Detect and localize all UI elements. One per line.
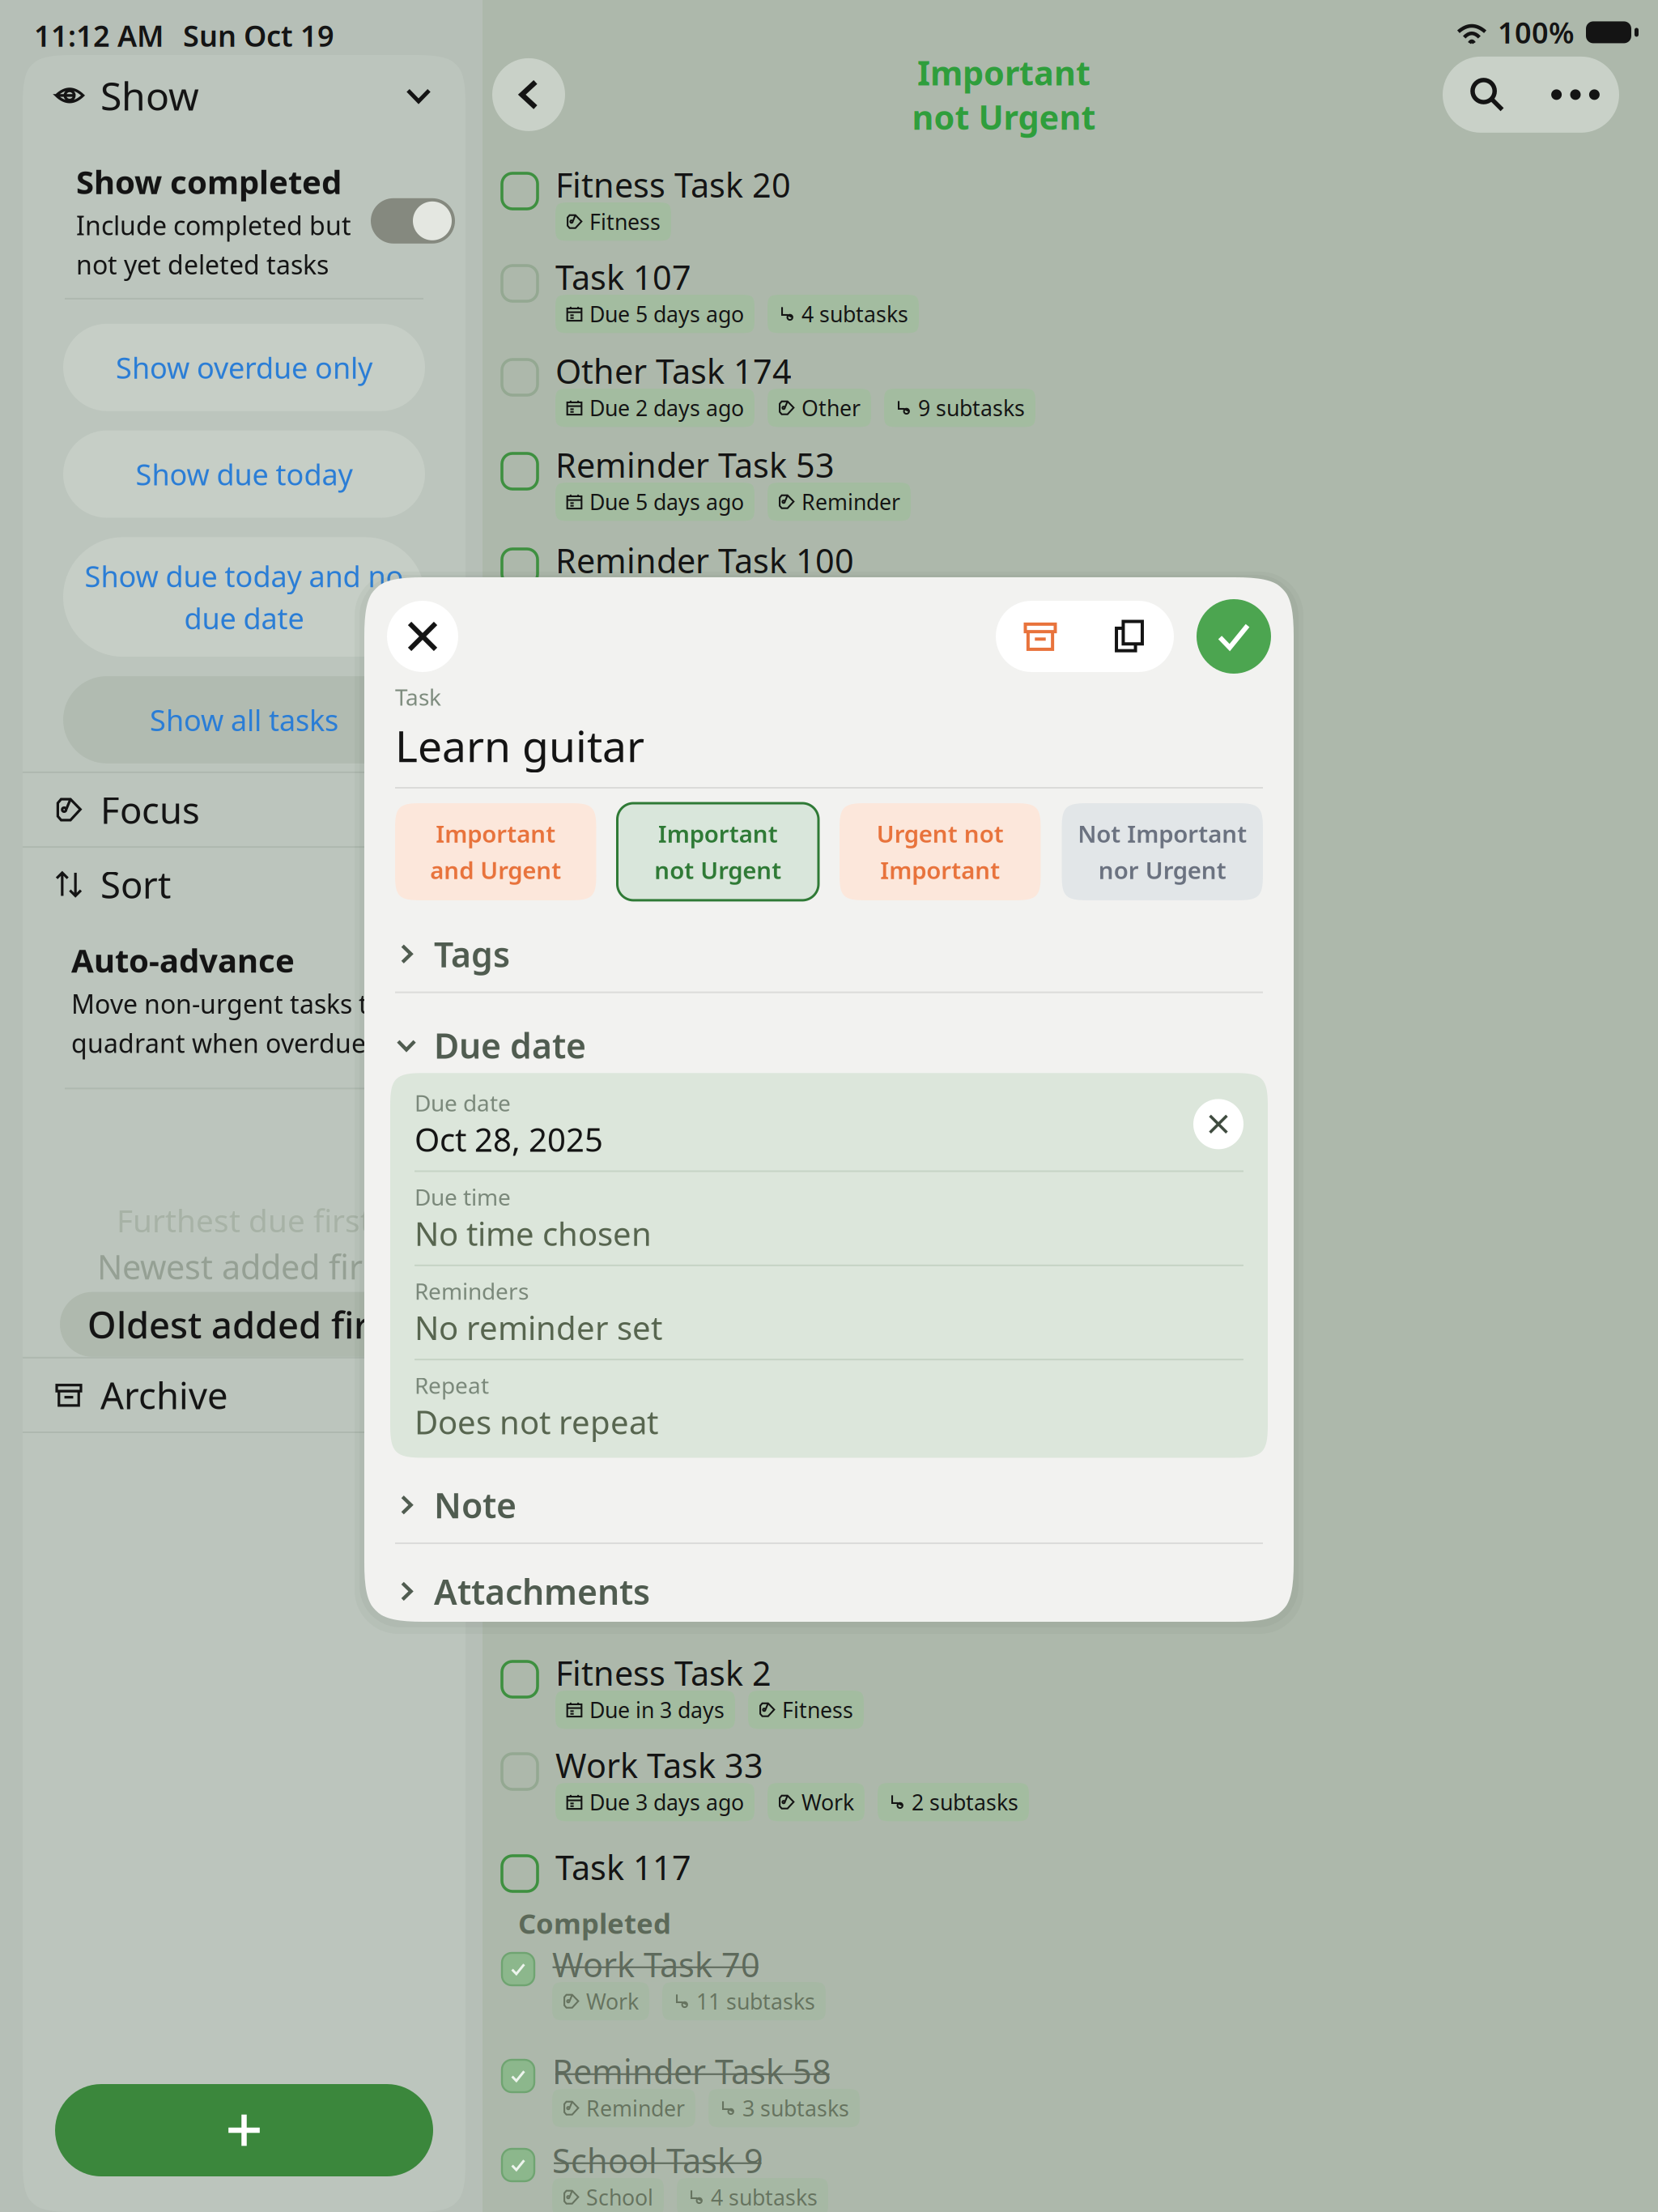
staticText: Work Task 33 (555, 1743, 763, 1787)
staticText: Reminder Task 58 (552, 2049, 831, 2093)
staticText: Show (100, 70, 199, 121)
button[interactable]: Note (395, 1482, 1263, 1528)
button[interactable]: Work Task 70 (502, 1948, 1587, 2020)
button[interactable]: Archive (996, 601, 1085, 672)
staticText: 3 subtasks (742, 2094, 849, 2122)
staticText: Reminder (586, 2094, 685, 2122)
button[interactable]: Work Task 33 (502, 1749, 1587, 1821)
button[interactable]: Not Important (1062, 803, 1263, 900)
staticText: not Urgent (912, 95, 1096, 139)
staticText: Due time (414, 1182, 511, 1212)
staticText: 11:12 AM (34, 16, 164, 55)
button[interactable]: Archive (23, 1358, 466, 1431)
button[interactable]: School Task 9 (502, 2144, 1587, 2212)
button[interactable]: Task 107 (502, 261, 1587, 333)
button[interactable]: Show (23, 55, 466, 133)
button[interactable]: Close (387, 601, 458, 672)
staticText: School Task 9 (552, 2138, 763, 2182)
staticText: Tags (434, 931, 510, 977)
staticText: 9 subtasks (918, 393, 1025, 422)
staticText: Due 2 days ago (589, 393, 744, 422)
staticText: and Urgent (430, 854, 561, 886)
staticText: Newest added first (97, 1244, 391, 1289)
staticText: No reminder set (414, 1306, 662, 1349)
button[interactable]: Clear due date (1193, 1099, 1243, 1149)
button[interactable]: Focus (23, 773, 466, 846)
staticText: Repeat (414, 1370, 489, 1400)
button[interactable]: Add task (55, 2084, 433, 2176)
staticText: Show all tasks (150, 700, 338, 739)
staticText: Important (880, 854, 1000, 886)
staticText: Not Important (1078, 818, 1247, 849)
staticText: quadrant when overdue (71, 1026, 366, 1060)
button[interactable]: Task 117 (502, 1851, 1587, 1891)
staticText: Reminder (801, 487, 900, 516)
staticText: Due 5 days ago (589, 300, 744, 328)
staticText: Fitness (589, 207, 661, 236)
staticText: Auto-advance (71, 939, 295, 982)
staticText: Due 3 days ago (589, 1788, 744, 1816)
button[interactable]: Show overdue only (63, 324, 425, 411)
button[interactable]: Due date (395, 1022, 1263, 1068)
staticText: Note (434, 1482, 517, 1528)
staticText: Show completed (76, 160, 342, 203)
staticText: Show overdue only (116, 348, 372, 387)
staticText: 11 subtasks (696, 1987, 815, 2016)
staticText: Learn guitar (395, 717, 644, 774)
button[interactable]: Duplicate (1085, 601, 1174, 672)
staticText: 4 subtasks (801, 300, 908, 328)
staticText: No time chosen (414, 1212, 652, 1255)
button[interactable]: Save (1197, 599, 1271, 674)
staticText: Task 117 (555, 1845, 691, 1889)
staticText: Attachments (434, 1568, 650, 1614)
staticText: Task (395, 682, 441, 712)
button[interactable]: Back (492, 58, 565, 131)
staticText: Reminder Task 100 (555, 538, 854, 583)
staticText: not yet deleted tasks (76, 247, 329, 282)
staticText: not Urgent (654, 854, 781, 886)
staticText: Show due today and no (85, 557, 404, 595)
staticText: Reminder Task 53 (555, 443, 835, 487)
staticText: Other Task 174 (555, 349, 792, 393)
staticText: Show due today (136, 455, 353, 493)
button[interactable]: Tags (395, 931, 1263, 977)
staticText: Does not repeat (414, 1400, 658, 1443)
staticText: Focus (100, 785, 200, 834)
staticText: Work Task 70 (552, 1942, 760, 1987)
button[interactable]: Other Task 174 (502, 355, 1587, 427)
button[interactable]: More options (1532, 57, 1619, 133)
button[interactable]: Show due today and no (63, 537, 425, 657)
button[interactable]: Search (1443, 57, 1532, 133)
button[interactable]: Reminder Task 58 (502, 2055, 1587, 2127)
staticText: 4 subtasks (711, 2183, 818, 2212)
button[interactable]: Fitness Task 20 (502, 168, 1587, 241)
button[interactable]: Fitness Task 2 (502, 1657, 1587, 1729)
staticText: Work (586, 1987, 639, 2016)
button[interactable]: Show due today (63, 430, 425, 518)
staticText: Important (917, 50, 1090, 95)
staticText: Due in 3 days (589, 1695, 725, 1724)
button[interactable]: Sort (23, 848, 466, 921)
button[interactable]: Important (395, 803, 596, 900)
button[interactable]: Show all tasks (63, 676, 425, 763)
staticText: Move non-urgent tasks to urgent (71, 986, 474, 1021)
staticText: Fitness Task 2 (555, 1651, 772, 1695)
button[interactable]: Important (617, 803, 818, 900)
staticText: Important (658, 818, 778, 849)
button[interactable]: Urgent not (840, 803, 1041, 900)
staticText: Work (801, 1788, 854, 1816)
staticText: Important (436, 818, 556, 849)
button[interactable]: Reminder Task 100 (502, 544, 1587, 585)
button[interactable]: Attachments (395, 1568, 1263, 1614)
staticText: Sun Oct 19 (183, 16, 334, 55)
staticText: Task 107 (555, 255, 691, 299)
staticText: School (586, 2183, 653, 2212)
staticText: Due date (434, 1022, 586, 1068)
staticText: Fitness Task 20 (555, 162, 791, 207)
staticText: nor Urgent (1098, 854, 1226, 886)
staticText: 100% (1498, 13, 1575, 52)
staticText: 2 subtasks (912, 1788, 1018, 1816)
button[interactable]: Reminder Task 53 (502, 449, 1587, 521)
staticText: due date (184, 599, 304, 637)
staticText: Due 5 days ago (589, 487, 744, 516)
